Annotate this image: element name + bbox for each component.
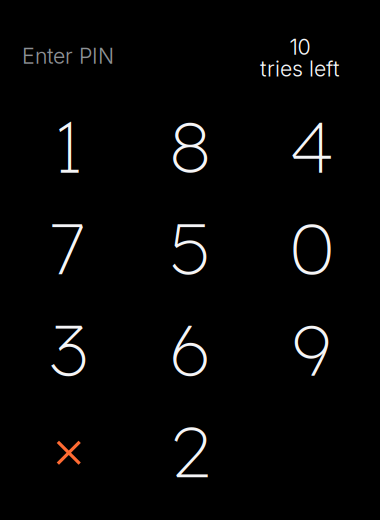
staticText: 5: [170, 202, 211, 292]
staticText: 3: [50, 304, 88, 394]
button[interactable]: Delete: [8, 399, 129, 501]
staticText: 1: [54, 101, 83, 191]
staticText: 10: [289, 34, 310, 60]
staticText: tries left: [260, 56, 340, 82]
button[interactable]: 7: [8, 196, 129, 298]
button[interactable]: 9: [251, 298, 372, 399]
staticText: Enter PIN: [22, 43, 114, 69]
button[interactable]: 6: [129, 298, 251, 399]
button[interactable]: 8: [129, 95, 251, 196]
button[interactable]: 3: [8, 298, 129, 399]
button[interactable]: 5: [129, 196, 251, 298]
staticText: 8: [169, 101, 211, 191]
button[interactable]: 1: [8, 95, 129, 196]
staticText: 7: [51, 202, 86, 292]
staticText: 6: [169, 304, 212, 394]
staticText: 0: [290, 202, 334, 292]
button[interactable]: 0: [251, 196, 372, 298]
staticText: 9: [292, 304, 332, 394]
button[interactable]: 2: [129, 399, 251, 501]
staticText: 2: [171, 405, 210, 495]
button[interactable]: 4: [251, 95, 372, 196]
staticText: 4: [289, 101, 334, 191]
